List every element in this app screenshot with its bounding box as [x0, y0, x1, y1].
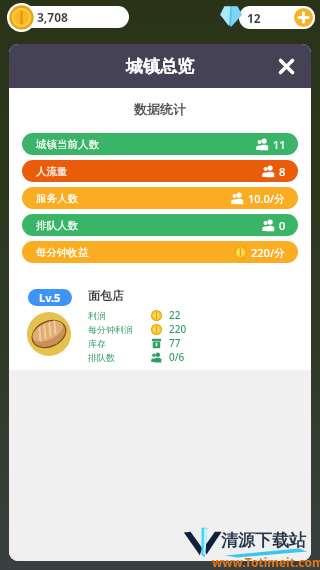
- button[interactable]: 城镇当前人数: [22, 133, 298, 155]
- staticText: 0/6: [169, 350, 185, 364]
- staticText: 3,708: [37, 9, 68, 25]
- button[interactable]: 3,708: [8, 6, 129, 28]
- button[interactable]: 服务人数: [22, 187, 298, 209]
- staticText: 每分钟利润: [88, 324, 151, 335]
- staticText: 库存: [88, 338, 151, 349]
- button[interactable]: Add gems: [294, 8, 313, 27]
- staticText: 8: [279, 164, 286, 179]
- button[interactable]: Lv.5: [9, 277, 311, 370]
- staticText: 利润: [88, 310, 151, 321]
- staticText: 城镇总览: [126, 56, 194, 77]
- button[interactable]: 每分钟收益: [22, 241, 298, 263]
- button[interactable]: 排队人数: [22, 214, 298, 236]
- staticText: 服务人数: [36, 192, 78, 205]
- staticText: 10.0/分: [248, 191, 286, 206]
- staticText: 排队数: [88, 352, 151, 363]
- staticText: 面包店: [88, 288, 124, 303]
- staticText: 77: [169, 336, 181, 350]
- staticText: 12: [247, 10, 261, 26]
- staticText: 22: [169, 308, 181, 322]
- button[interactable]: 人流量: [22, 160, 298, 182]
- staticText: 数据统计: [9, 101, 311, 117]
- staticText: 220: [169, 322, 187, 336]
- staticText: 排队人数: [36, 219, 78, 232]
- staticText: www.Totimeit.com: [212, 554, 320, 570]
- staticText: 城镇当前人数: [36, 138, 99, 151]
- staticText: 11: [273, 137, 286, 152]
- staticText: 人流量: [36, 165, 68, 178]
- button[interactable]: 12: [239, 6, 315, 29]
- staticText: 0: [279, 218, 286, 233]
- staticText: 220/分: [251, 245, 286, 260]
- button[interactable]: Close: [271, 51, 301, 81]
- staticText: 每分钟收益: [36, 246, 89, 259]
- staticText: 清源下载站: [221, 530, 306, 551]
- staticText: Lv.5: [39, 290, 61, 305]
